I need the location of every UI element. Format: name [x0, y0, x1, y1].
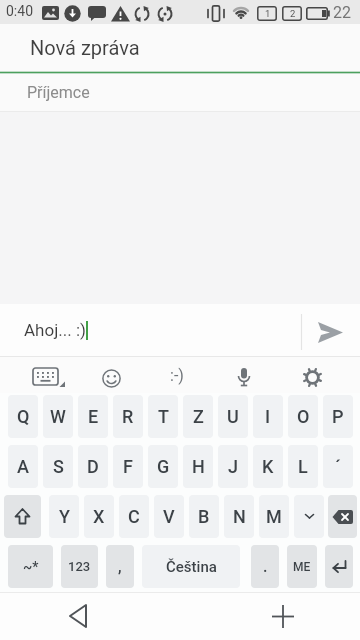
staticText: W: [50, 406, 66, 427]
staticText: O: [297, 406, 310, 427]
staticText: D: [87, 456, 99, 477]
staticText: ,: [118, 557, 122, 576]
staticText: G: [157, 456, 170, 477]
staticText: 1: [265, 8, 271, 19]
staticText: ´: [335, 456, 341, 477]
staticText: E: [88, 406, 99, 427]
staticText: K: [262, 456, 274, 477]
staticText: Z: [193, 406, 204, 427]
staticText: 22: [333, 3, 351, 22]
staticText: H: [192, 456, 205, 477]
staticText: B: [198, 506, 210, 527]
staticText: Q: [17, 406, 30, 427]
staticText: .: [263, 557, 268, 576]
staticText: I: [265, 406, 271, 427]
staticText: S: [53, 456, 64, 477]
staticText: N: [233, 506, 246, 527]
staticText: L: [298, 456, 308, 477]
staticText: 123: [68, 559, 91, 574]
staticText: U: [227, 406, 239, 427]
staticText: J: [228, 456, 238, 477]
staticText: Y: [59, 506, 70, 527]
staticText: X: [93, 506, 105, 527]
staticText: P: [332, 406, 344, 427]
staticText: Nová zpráva: [30, 36, 140, 59]
staticText: ~*: [23, 559, 39, 575]
staticText: V: [163, 506, 175, 527]
staticText: T: [158, 406, 169, 427]
staticText: Ahoj... :): [24, 320, 86, 340]
staticText: C: [128, 506, 140, 527]
staticText: ME: [293, 560, 311, 574]
staticText: F: [123, 456, 133, 477]
staticText: R: [122, 406, 134, 427]
staticText: :-): [170, 366, 184, 385]
staticText: 0:40: [6, 3, 33, 19]
staticText: Čeština: [166, 558, 217, 576]
staticText: Příjemce: [27, 83, 90, 102]
staticText: M: [266, 506, 282, 527]
staticText: 2: [290, 8, 296, 19]
staticText: A: [17, 456, 29, 477]
